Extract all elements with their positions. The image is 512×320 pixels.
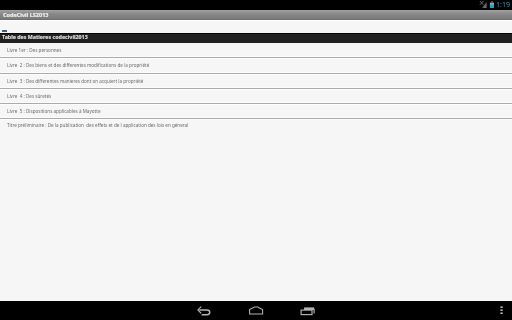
staticText: 1:19	[496, 0, 511, 9]
button[interactable]: Recent apps	[298, 304, 320, 317]
staticText: Table des Matieres codecivil2013	[2, 33, 88, 40]
staticText: Livre 5 : Dispositions applicables à May…	[7, 108, 101, 114]
staticText: Livre 2 : Des biens et des differentes m…	[7, 62, 150, 68]
button[interactable]: Back	[194, 304, 217, 317]
button[interactable]: Livre 3 : Des differentes manieres dont …	[0, 73, 512, 89]
button[interactable]: Livre 1er : Des personnes	[0, 42, 512, 57]
button[interactable]: Livre 4 : Des sûretés	[0, 88, 512, 103]
staticText: Livre 4 : Des sûretés	[7, 93, 52, 99]
staticText: CodeCivil LS2013	[3, 11, 49, 18]
button[interactable]: More options	[494, 301, 512, 320]
button[interactable]: Titre préliminaire : De la publication d…	[0, 118, 512, 132]
button[interactable]: Home	[245, 304, 268, 317]
staticText: Livre 3 : Des differentes manieres dont …	[7, 78, 144, 84]
button[interactable]: Livre 5 : Dispositions applicables à May…	[0, 103, 512, 118]
button[interactable]: Livre 2 : Des biens et des differentes m…	[0, 57, 512, 73]
staticText: Livre 1er : Des personnes	[7, 47, 62, 53]
staticText: Titre préliminaire : De la publication d…	[7, 122, 189, 128]
